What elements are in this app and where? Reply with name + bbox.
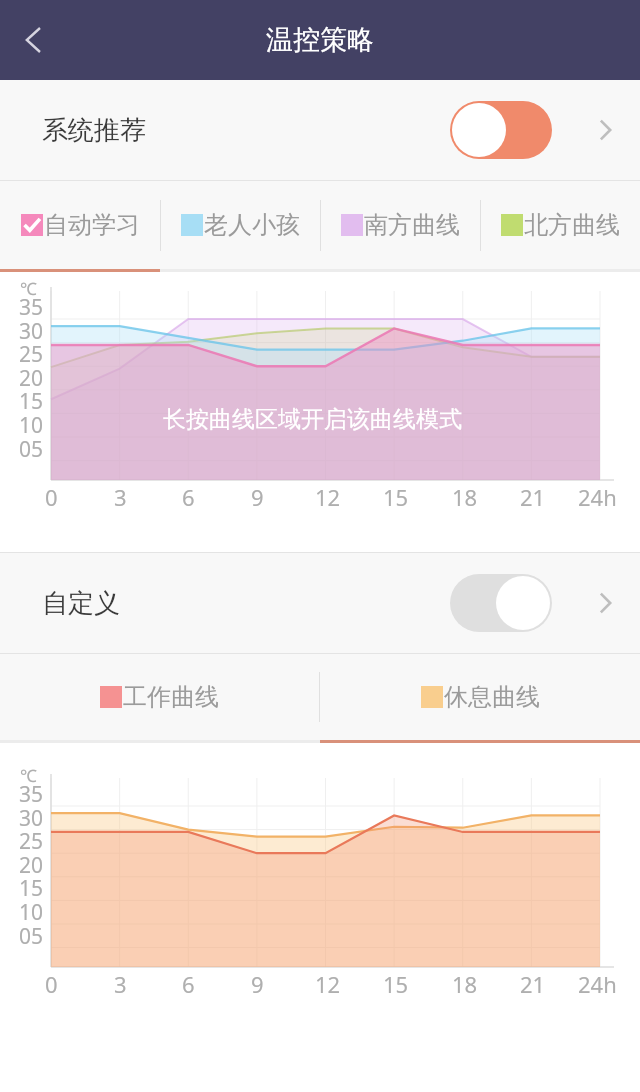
staticText: 25 xyxy=(19,827,44,856)
staticText: 工作曲线 xyxy=(123,682,219,712)
staticText: ℃ xyxy=(20,764,37,787)
staticText: 0 xyxy=(45,482,58,512)
staticText: 15 xyxy=(383,969,409,999)
staticText: 25 xyxy=(19,340,44,369)
button[interactable]: 休息曲线 xyxy=(320,654,640,740)
staticText: 3 xyxy=(114,482,127,512)
staticText: 05 xyxy=(19,922,44,951)
staticText: 20 xyxy=(19,364,44,393)
staticText: 6 xyxy=(182,969,195,999)
staticText: 自动学习 xyxy=(44,210,140,240)
button[interactable]: 北方曲线 xyxy=(481,181,640,269)
staticText: 12 xyxy=(315,482,341,512)
staticText: 24h xyxy=(578,969,617,999)
button[interactable]: System recommendation toggle xyxy=(450,101,552,159)
staticText: 系统推荐 xyxy=(42,114,146,147)
staticText: 15 xyxy=(383,482,409,512)
staticText: 21 xyxy=(520,482,546,512)
staticText: 休息曲线 xyxy=(444,682,540,712)
staticText: 长按曲线区域开启该曲线模式 xyxy=(163,405,462,434)
staticText: 南方曲线 xyxy=(364,210,460,240)
staticText: 老人小孩 xyxy=(204,210,300,240)
button[interactable]: Custom temperature curve chart xyxy=(0,743,640,1092)
staticText: 12 xyxy=(315,969,341,999)
button[interactable]: 老人小孩 xyxy=(161,181,320,269)
staticText: 10 xyxy=(19,898,44,927)
staticText: 10 xyxy=(19,411,44,440)
staticText: 3 xyxy=(114,969,127,999)
staticText: 0 xyxy=(45,969,58,999)
staticText: 15 xyxy=(19,874,44,903)
button[interactable]: 自动学习 xyxy=(0,181,160,269)
button[interactable]: System recommended temperature curve cha… xyxy=(0,272,640,520)
staticText: ℃ xyxy=(20,277,37,300)
button[interactable]: 自定义 xyxy=(0,553,640,653)
button[interactable]: Custom toggle xyxy=(450,574,552,632)
button[interactable]: Custom details xyxy=(582,580,628,626)
staticText: 6 xyxy=(182,482,195,512)
button[interactable]: 南方曲线 xyxy=(321,181,480,269)
button[interactable]: 工作曲线 xyxy=(0,654,319,740)
staticText: 自定义 xyxy=(42,587,120,620)
staticText: 24h xyxy=(578,482,617,512)
staticText: 18 xyxy=(452,482,478,512)
button[interactable]: System recommendation details xyxy=(582,107,628,153)
staticText: 北方曲线 xyxy=(524,210,620,240)
staticText: 21 xyxy=(520,969,546,999)
staticText: 18 xyxy=(452,969,478,999)
staticText: 30 xyxy=(19,317,44,346)
staticText: 15 xyxy=(19,387,44,416)
staticText: 05 xyxy=(19,435,44,464)
staticText: 9 xyxy=(251,482,264,512)
staticText: 35 xyxy=(19,780,44,809)
button[interactable]: 系统推荐 xyxy=(0,80,640,180)
staticText: 温控策略 xyxy=(266,23,374,57)
staticText: 30 xyxy=(19,804,44,833)
staticText: 20 xyxy=(19,851,44,880)
button[interactable]: Back xyxy=(4,10,64,70)
staticText: 9 xyxy=(251,969,264,999)
staticText: 35 xyxy=(19,293,44,322)
